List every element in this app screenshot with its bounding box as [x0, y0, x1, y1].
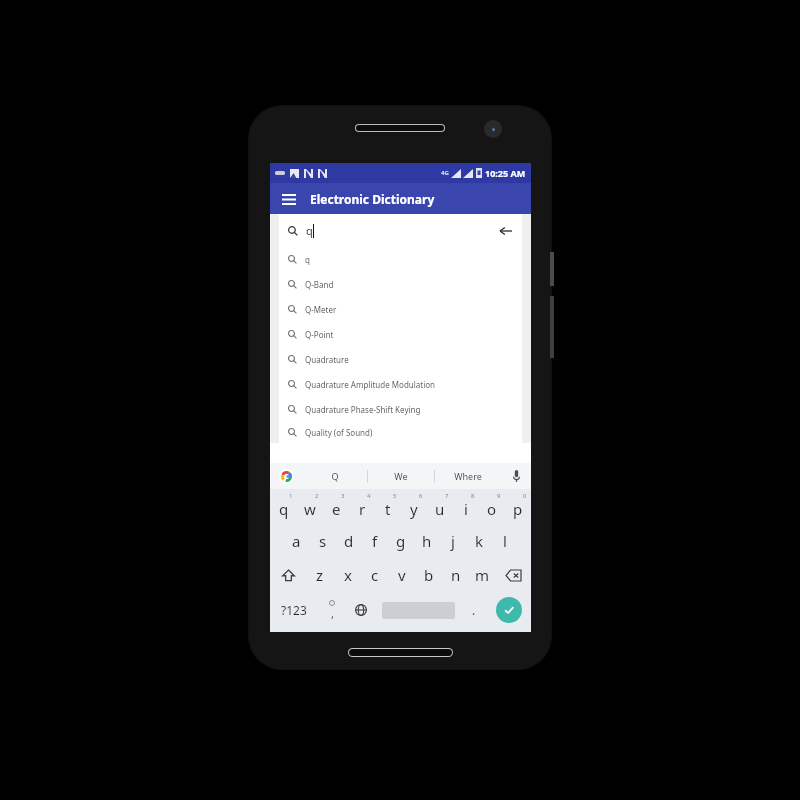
staticText: h [422, 531, 432, 551]
button[interactable]: h [414, 524, 440, 558]
button[interactable]: Q-Meter [279, 297, 522, 322]
button[interactable]: 5 [375, 489, 401, 524]
staticText: We [394, 470, 408, 482]
staticText: u [435, 499, 445, 519]
staticText: c [371, 565, 379, 585]
staticText: f [372, 531, 378, 551]
button[interactable]: m [469, 558, 496, 592]
staticText: 1 [289, 492, 293, 500]
button[interactable]: k [466, 524, 492, 558]
staticText: Quadrature Amplitude Modulation [305, 379, 436, 390]
button[interactable]: v [388, 558, 415, 592]
button[interactable]: g [388, 524, 414, 558]
staticText: 7 [445, 492, 449, 500]
staticText: q [305, 254, 310, 265]
button[interactable]: Voice input [501, 463, 531, 489]
staticText: z [316, 565, 324, 585]
button[interactable]: We [368, 463, 434, 489]
staticText: 3 [341, 492, 345, 500]
button[interactable]: Change keyboard language [346, 592, 376, 628]
staticText: Where [454, 470, 482, 482]
staticText: 4 [367, 492, 371, 500]
staticText: p [513, 499, 523, 519]
staticText: x [344, 565, 352, 585]
staticText: m [475, 565, 490, 585]
staticText: j [451, 531, 455, 551]
staticText: ?123 [281, 602, 307, 618]
staticText: r [359, 499, 366, 519]
staticText: 8 [471, 492, 475, 500]
button[interactable]: Quadrature Phase-Shift Keying [279, 397, 522, 422]
staticText: k [475, 531, 484, 551]
staticText: Quality (of Sound) [305, 427, 373, 438]
button[interactable]: l [492, 524, 518, 558]
button[interactable]: n [442, 558, 469, 592]
button[interactable]: Q-Band [279, 272, 522, 297]
staticText: e [332, 499, 341, 519]
button[interactable]: c [361, 558, 388, 592]
button[interactable]: 8 [453, 489, 479, 524]
button[interactable]: 1 [270, 489, 297, 524]
button[interactable]: 0 [505, 489, 531, 524]
button[interactable]: Quadrature [279, 347, 522, 372]
staticText: Q-Band [305, 279, 334, 290]
button[interactable]: Google [270, 463, 302, 489]
staticText: q [306, 223, 313, 238]
button[interactable]: Quadrature Amplitude Modulation [279, 372, 522, 397]
button[interactable]: 4 [349, 489, 375, 524]
button[interactable]: 2 [297, 489, 323, 524]
staticText: v [398, 565, 406, 585]
staticText: g [396, 531, 406, 551]
staticText: 6 [419, 492, 423, 500]
staticText: Q [331, 470, 339, 482]
staticText: . [472, 602, 476, 618]
button[interactable]: q [279, 214, 522, 247]
staticText: q [279, 499, 289, 519]
button[interactable]: Back [496, 221, 516, 241]
button[interactable]: Quality (of Sound) [279, 422, 522, 443]
button[interactable]: z [306, 558, 334, 592]
staticText: Quadrature [305, 354, 349, 365]
button[interactable]: a [283, 524, 310, 558]
button[interactable]: Where [435, 463, 501, 489]
staticText: o [487, 499, 497, 519]
button[interactable]: 9 [479, 489, 505, 524]
staticText: s [319, 531, 327, 551]
button[interactable]: Done [487, 592, 531, 628]
button[interactable]: Q-Point [279, 322, 522, 347]
button[interactable]: . [461, 592, 487, 628]
button[interactable]: Open navigation menu [278, 188, 300, 210]
staticText: Electronic Dictionary [310, 191, 435, 207]
staticText: i [464, 499, 468, 519]
button[interactable]: 7 [427, 489, 453, 524]
button[interactable]: b [415, 558, 442, 592]
staticText: Q-Point [305, 329, 334, 340]
staticText: b [424, 565, 434, 585]
staticText: 10:25 AM [485, 167, 526, 179]
staticText: 2 [315, 492, 319, 500]
staticText: 5 [393, 492, 397, 500]
button[interactable]: ?123 [270, 592, 318, 628]
button[interactable]: 6 [401, 489, 427, 524]
staticText: 9 [497, 492, 501, 500]
staticText: , [331, 606, 334, 621]
button[interactable]: q [279, 247, 522, 272]
button[interactable]: d [336, 524, 362, 558]
button[interactable]: Q [302, 463, 367, 489]
button[interactable]: f [362, 524, 388, 558]
staticText: d [344, 531, 354, 551]
staticText: y [410, 499, 418, 519]
staticText: w [304, 499, 316, 519]
button[interactable]: x [334, 558, 361, 592]
button[interactable]: Shift [270, 558, 306, 592]
staticText: a [292, 531, 301, 551]
staticText: n [451, 565, 461, 585]
staticText: Quadrature Phase-Shift Keying [305, 404, 421, 415]
button[interactable]: Emoji and comma [318, 592, 346, 628]
button[interactable]: j [440, 524, 466, 558]
button[interactable]: Backspace [496, 558, 531, 592]
button[interactable]: 3 [323, 489, 349, 524]
button[interactable]: s [310, 524, 336, 558]
button[interactable]: Space [376, 592, 461, 628]
staticText: t [385, 499, 391, 519]
